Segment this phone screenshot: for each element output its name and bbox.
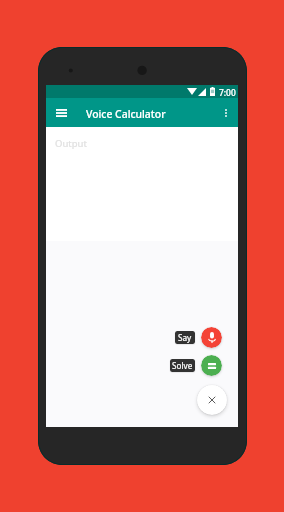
staticText: 7:00 bbox=[219, 87, 236, 98]
button[interactable]: Say bbox=[201, 327, 222, 348]
button[interactable]: Solve bbox=[201, 355, 222, 376]
button[interactable]: Say bbox=[175, 331, 195, 344]
button[interactable]: Close bbox=[197, 385, 227, 415]
button[interactable]: Open navigation drawer bbox=[50, 102, 72, 124]
staticText: Output bbox=[55, 137, 87, 150]
staticText: Voice Calculator bbox=[86, 107, 166, 121]
button[interactable]: Solve bbox=[170, 359, 195, 372]
button[interactable]: More options bbox=[217, 104, 235, 122]
staticText: Say bbox=[178, 332, 192, 343]
staticText: Solve bbox=[172, 360, 193, 371]
